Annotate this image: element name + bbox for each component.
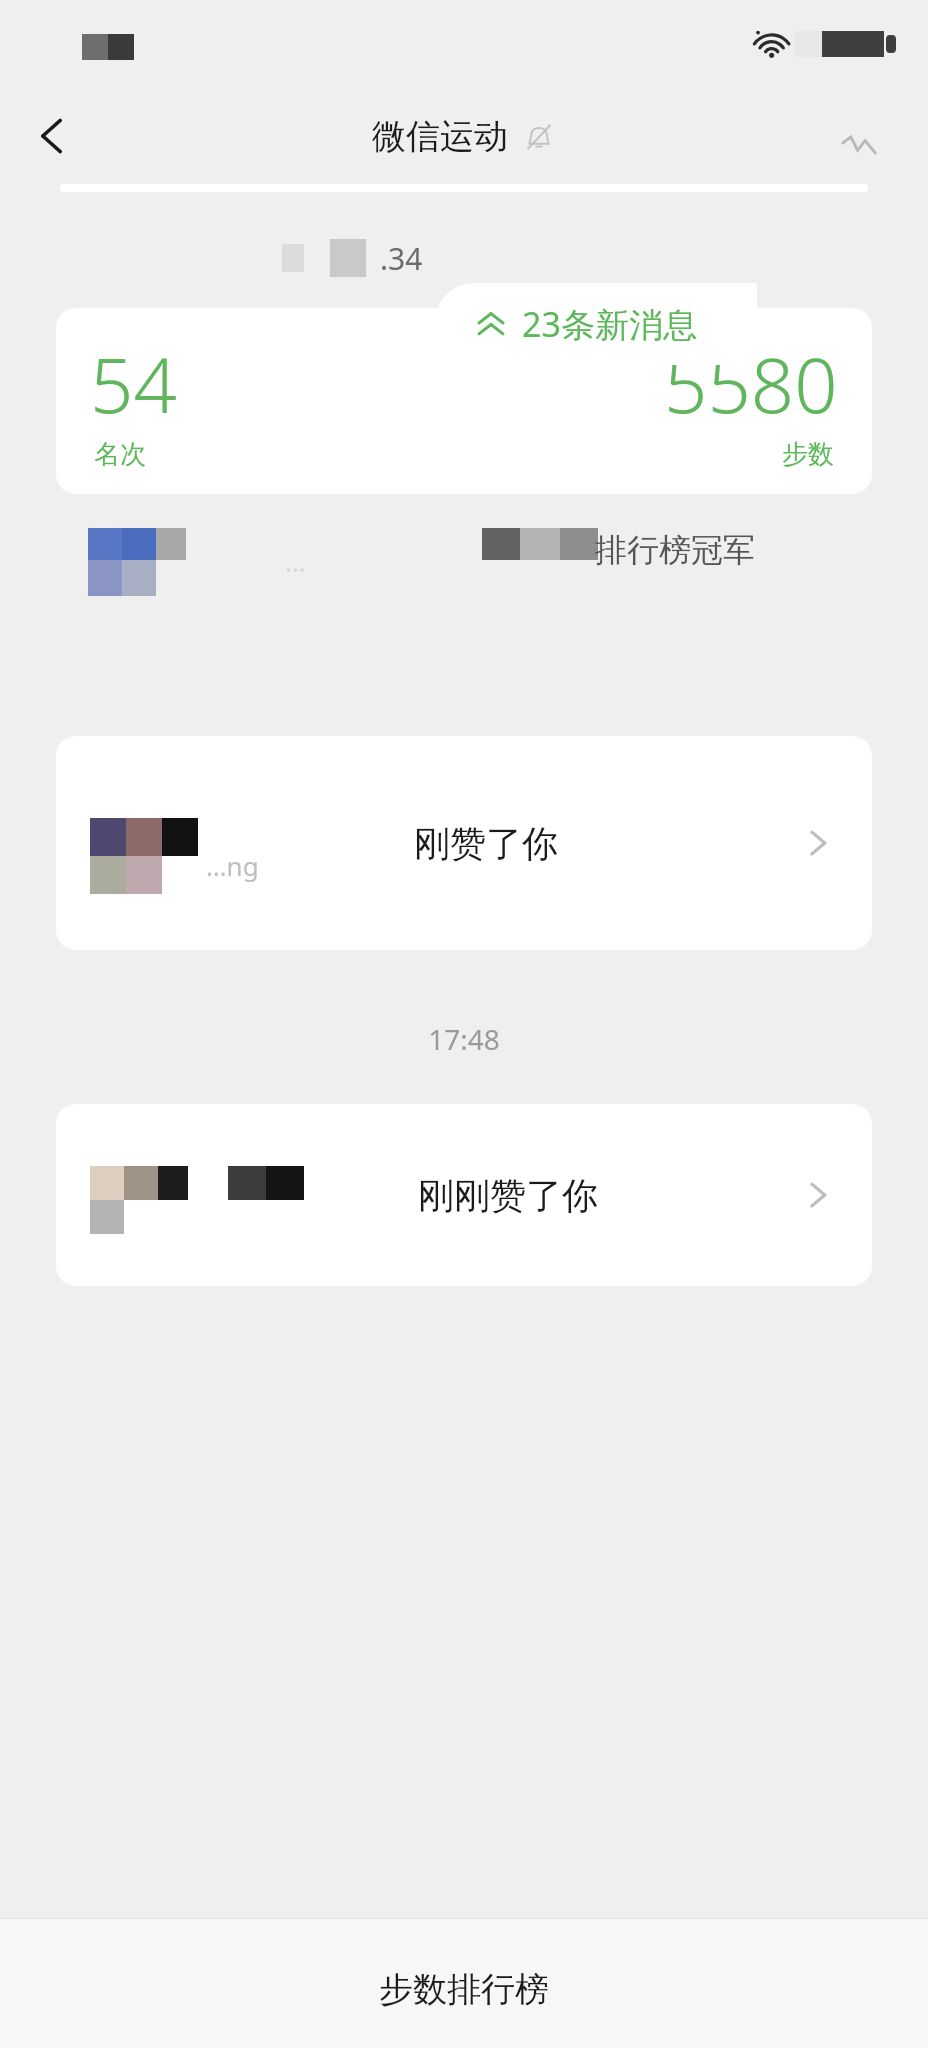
staticText: 步数	[782, 438, 834, 471]
staticText: …	[285, 544, 306, 579]
staticText: 23条新消息	[522, 301, 697, 347]
staticText: 刚刚赞了你	[418, 1173, 598, 1218]
staticText: 5580	[664, 332, 838, 436]
button[interactable]: 步数排行榜	[0, 1918, 928, 2048]
staticText: 刚赞了你	[414, 821, 558, 866]
button[interactable]: 23条新消息	[434, 283, 757, 365]
button[interactable]: More	[842, 128, 876, 162]
staticText: .34	[380, 238, 423, 279]
staticText: 54	[90, 332, 177, 436]
staticText: 步数排行榜	[379, 1968, 549, 2011]
button[interactable]: 54	[56, 308, 872, 494]
button[interactable]: …ng	[56, 736, 872, 950]
staticText: …ng	[206, 848, 259, 883]
button[interactable]: Back	[18, 102, 86, 170]
button[interactable]: 刚刚赞了你	[56, 1104, 872, 1286]
staticText: 排行榜冠军	[595, 530, 755, 570]
staticText: 名次	[94, 438, 146, 471]
staticText: 17:48	[0, 1020, 928, 1058]
staticText: 微信运动	[372, 115, 508, 158]
